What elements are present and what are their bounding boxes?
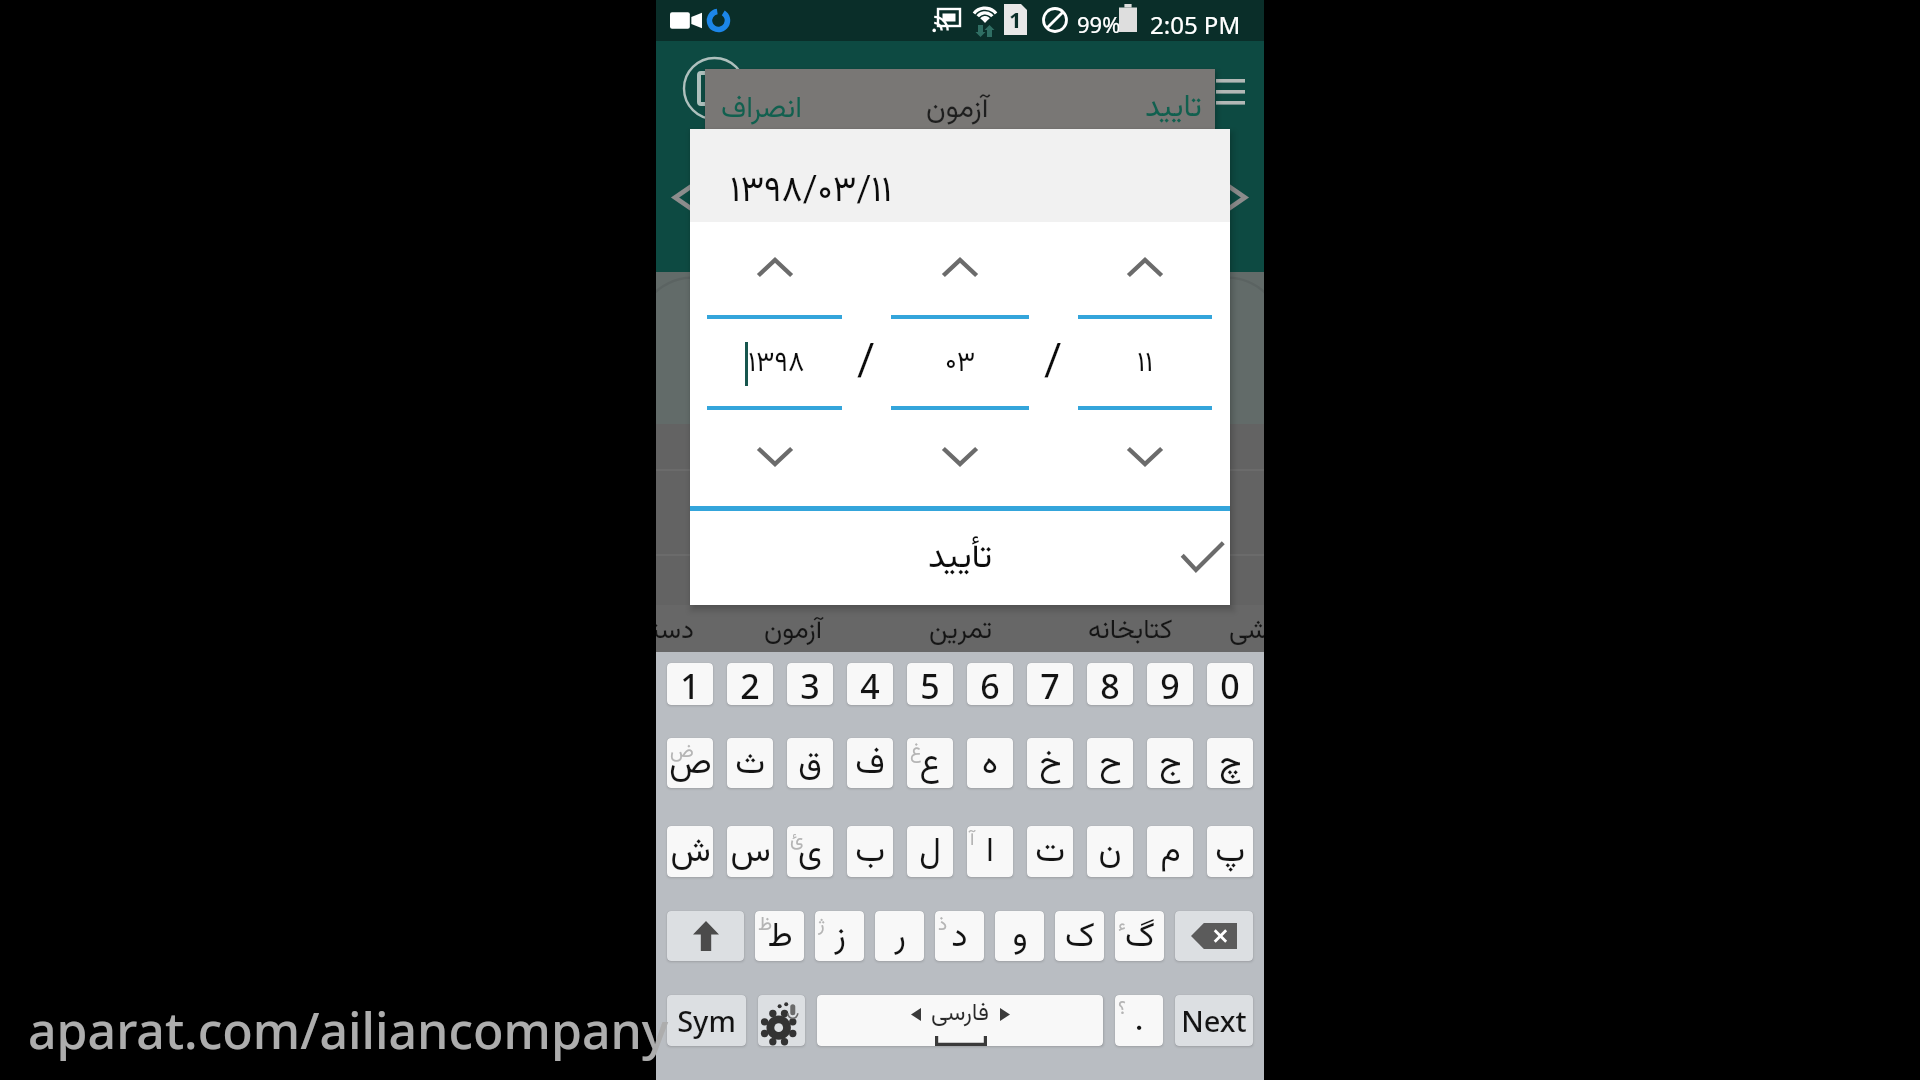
staticText: آزمایشی — [1229, 610, 1264, 652]
button[interactable]: ش — [667, 826, 713, 877]
staticText: خ — [1039, 738, 1062, 788]
button[interactable]: 6 — [967, 663, 1013, 705]
staticText: 5 — [920, 663, 940, 705]
button[interactable]: س — [727, 826, 773, 877]
button[interactable]: ل — [907, 826, 953, 877]
staticText: س — [730, 826, 771, 877]
staticText: 4 — [860, 663, 880, 705]
staticText: پ — [1215, 826, 1245, 877]
button[interactable]: Backspace — [1175, 911, 1253, 961]
button[interactable]: Increase — [923, 248, 997, 286]
button[interactable]: ح — [1087, 738, 1133, 788]
staticText: ر — [894, 911, 906, 961]
button[interactable]: ط — [755, 911, 804, 961]
staticText: 1 — [1009, 4, 1022, 34]
button[interactable]: ب — [847, 826, 893, 877]
staticText: 9 — [1160, 663, 1180, 705]
staticText: 6 — [980, 663, 1000, 705]
button[interactable]: م — [1147, 826, 1193, 877]
staticText: ک — [1065, 911, 1095, 961]
button[interactable]: Menu — [1216, 76, 1248, 112]
button[interactable]: Sym — [667, 995, 746, 1046]
button[interactable]: ت — [1027, 826, 1073, 877]
staticText: aparat.com/ailiancompany — [28, 996, 669, 1064]
staticText: 99% — [1077, 9, 1121, 39]
button[interactable]: . — [1115, 995, 1163, 1046]
button[interactable]: Increase — [1108, 248, 1182, 286]
button[interactable]: 0 — [1207, 663, 1253, 705]
staticText: ۱۱ — [1137, 342, 1154, 386]
button[interactable]: 1 — [667, 663, 713, 705]
button[interactable]: ا — [967, 826, 1013, 877]
button[interactable]: Next — [1175, 995, 1253, 1046]
button[interactable]: ث — [727, 738, 773, 788]
staticText: Next — [1181, 1001, 1247, 1040]
button[interactable]: ف — [847, 738, 893, 788]
staticText: ی — [798, 826, 822, 877]
button[interactable]: ز — [815, 911, 864, 961]
staticText: م — [1160, 826, 1181, 877]
staticText: ژ — [818, 911, 825, 941]
staticText: تایید — [1145, 84, 1202, 129]
staticText: ذ — [938, 911, 948, 941]
staticText: 2 — [740, 663, 760, 705]
staticText: و — [1012, 911, 1028, 961]
staticText: ظ — [758, 911, 773, 941]
staticText: کتابخانه — [1088, 610, 1173, 652]
button[interactable]: آزمایشی — [1216, 605, 1264, 652]
staticText: ه — [982, 738, 998, 788]
staticText: آ — [970, 826, 975, 856]
staticText: ء — [1118, 911, 1126, 941]
staticText: ل — [919, 826, 941, 877]
staticText: ئ — [790, 826, 804, 856]
button[interactable]: ق — [787, 738, 833, 788]
button[interactable]: تأیید — [690, 511, 1230, 605]
staticText: Sym — [677, 1001, 736, 1040]
button[interactable]: تمرین — [890, 605, 1030, 652]
button[interactable]: چ — [1207, 738, 1253, 788]
staticText: 7 — [1040, 663, 1060, 705]
button[interactable]: گ — [1115, 911, 1164, 961]
button[interactable]: ک — [1055, 911, 1104, 961]
staticText: ع — [919, 738, 941, 788]
staticText: فارسی — [931, 995, 990, 1033]
button[interactable]: 3 — [787, 663, 833, 705]
button[interactable]: پ — [1207, 826, 1253, 877]
button[interactable]: Increase — [738, 248, 812, 286]
staticText: غ — [910, 738, 922, 768]
button[interactable]: Shift — [667, 911, 744, 961]
button[interactable]: ر — [875, 911, 924, 961]
button[interactable]: خ — [1027, 738, 1073, 788]
button[interactable]: 4 — [847, 663, 893, 705]
button[interactable]: 7 — [1027, 663, 1073, 705]
button[interactable]: 9 — [1147, 663, 1193, 705]
button[interactable]: آزمون — [723, 605, 863, 652]
button[interactable]: ج — [1147, 738, 1193, 788]
staticText: ص — [669, 738, 712, 788]
button[interactable]: دسترسی — [656, 605, 704, 652]
staticText: ق — [798, 738, 822, 788]
button[interactable]: ع — [907, 738, 953, 788]
button[interactable]: ن — [1087, 826, 1133, 877]
staticText: 1 — [680, 663, 700, 705]
button[interactable]: ص — [667, 738, 713, 788]
button[interactable]: Decrease — [738, 438, 812, 476]
staticText: 2:05 PM — [1150, 8, 1241, 41]
button[interactable]: و — [995, 911, 1044, 961]
button[interactable]: Settings — [758, 995, 805, 1046]
staticText: انصراف — [721, 87, 803, 129]
button[interactable]: Decrease — [923, 438, 997, 476]
button[interactable]: 5 — [907, 663, 953, 705]
button[interactable]: 2 — [727, 663, 773, 705]
staticText: / — [1044, 330, 1063, 399]
button[interactable]: 8 — [1087, 663, 1133, 705]
button[interactable]: ه — [967, 738, 1013, 788]
staticText: ض — [670, 738, 694, 768]
staticText: ث — [735, 738, 765, 788]
button[interactable]: Space — [817, 995, 1103, 1046]
button[interactable]: د — [935, 911, 984, 961]
button[interactable]: Decrease — [1108, 438, 1182, 476]
staticText: ۱۳۹۸/۰۳/۱۱ — [730, 164, 892, 220]
button[interactable]: کتابخانه — [1060, 605, 1200, 652]
button[interactable]: ی — [787, 826, 833, 877]
